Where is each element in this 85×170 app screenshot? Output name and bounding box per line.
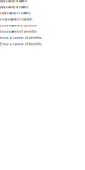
staticText: Enjoy a variety of benefits bbox=[0, 12, 30, 15]
staticText: Enjoy a variety of benefits bbox=[0, 24, 36, 27]
staticText: Enjoy a variety of benefits bbox=[0, 6, 28, 9]
staticText: Enjoy a variety of benefits bbox=[0, 36, 41, 40]
staticText: Enjoy a variety of benefits bbox=[0, 0, 27, 3]
staticText: Enjoy a variety of benefits bbox=[0, 18, 32, 21]
staticText: Enjoy a variety of benefits bbox=[0, 30, 36, 33]
staticText: Enjoy a variety of benefits bbox=[0, 43, 41, 46]
